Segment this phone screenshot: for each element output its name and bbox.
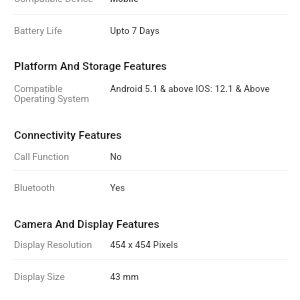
button[interactable]: Compatible Operating System <box>0 83 300 104</box>
staticText: No <box>110 151 122 162</box>
staticText: Battery Life <box>14 25 110 36</box>
staticText: Call Function <box>14 151 110 162</box>
staticText: Connectivity Features <box>14 129 300 142</box>
button[interactable]: Call Function <box>0 151 300 162</box>
staticText: Camera And Display Features <box>14 218 300 231</box>
staticText: Yes <box>110 182 126 193</box>
button[interactable]: Compatible Device <box>0 0 300 4</box>
staticText: Bluetooth <box>14 182 110 193</box>
staticText: Compatible Operating System <box>14 83 110 104</box>
staticText: Mobile <box>110 0 139 4</box>
staticText: Display Resolution <box>14 239 110 250</box>
button[interactable]: Display Resolution <box>0 239 300 250</box>
staticText: Platform And Storage Features <box>14 60 300 73</box>
staticText: 454 x 454 Pixels <box>110 239 178 250</box>
staticText: Upto 7 Days <box>110 25 160 36</box>
staticText: Compatible Device <box>14 0 110 4</box>
staticText: Android 5.1 & above IOS: 12.1 & Above <box>110 83 270 94</box>
button[interactable]: Bluetooth <box>0 182 300 193</box>
staticText: 43 mm <box>110 271 139 282</box>
button[interactable]: Display Size <box>0 271 300 282</box>
staticText: Display Size <box>14 271 110 282</box>
button[interactable]: Battery Life <box>0 25 300 36</box>
